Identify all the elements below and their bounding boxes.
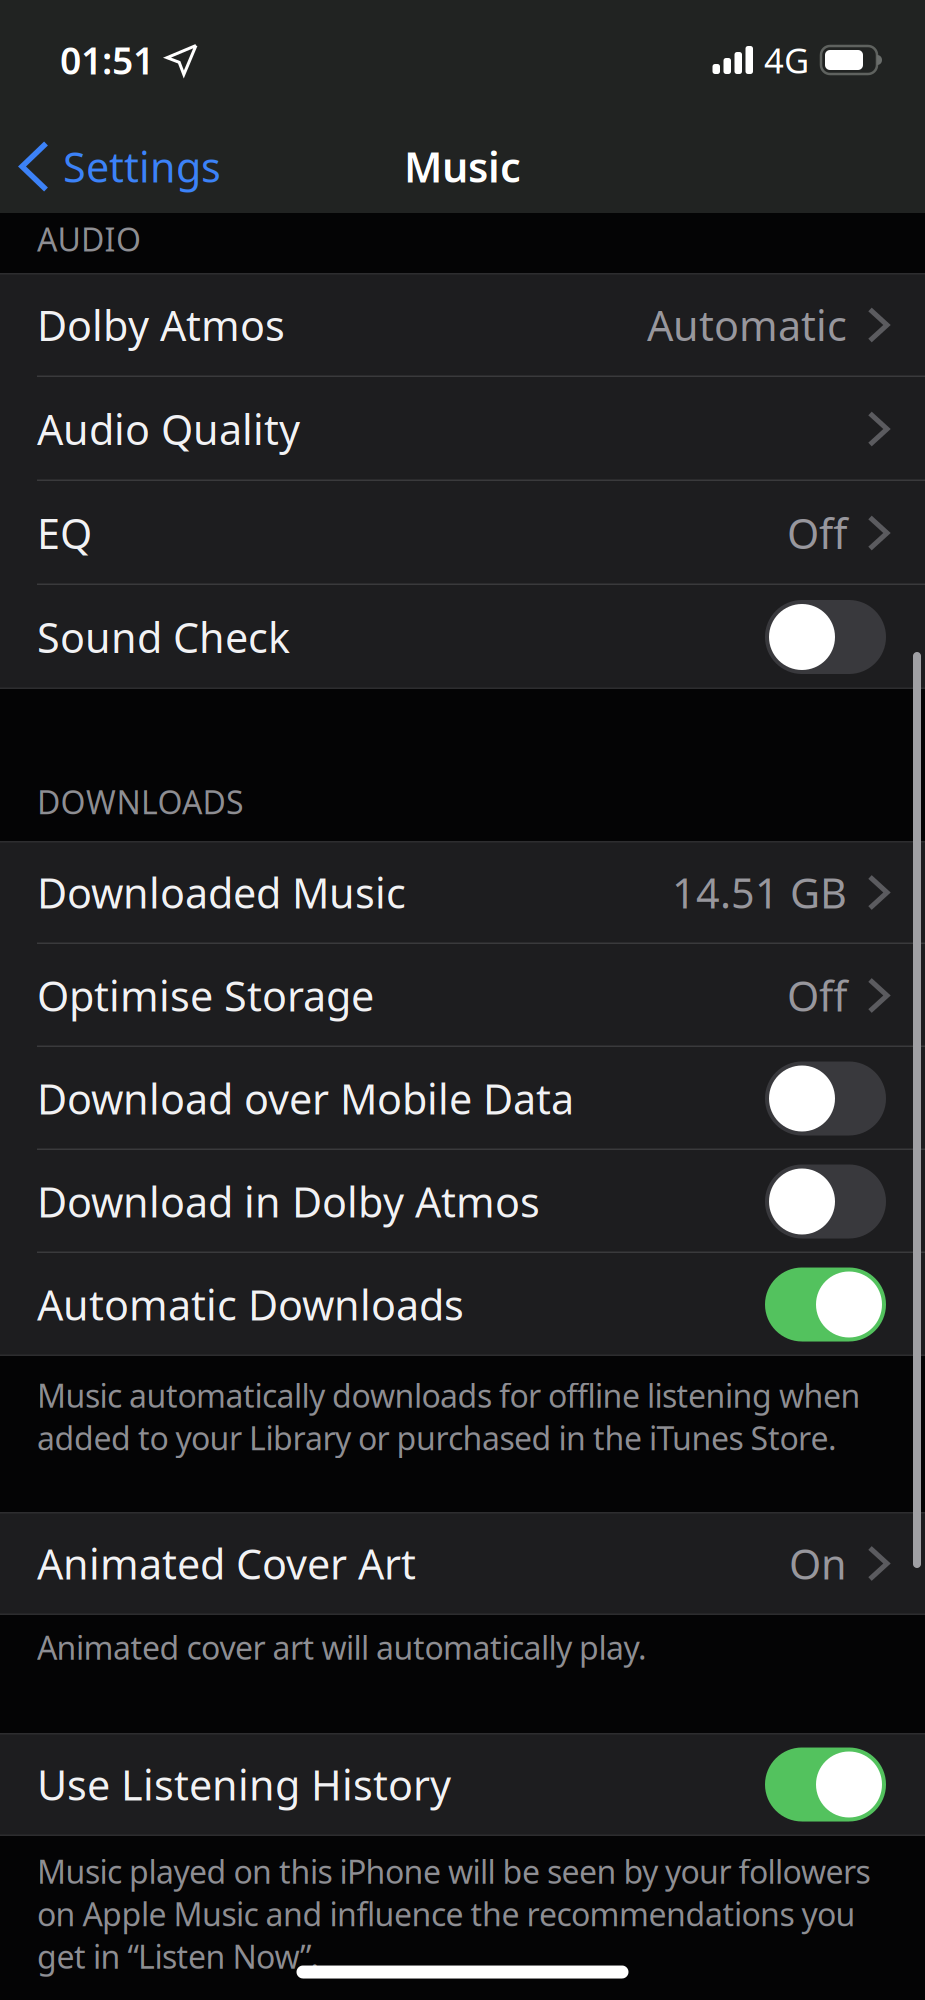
button[interactable]: EQ: [0, 481, 925, 585]
button[interactable]: Sound Check: [765, 600, 886, 674]
staticText: Download in Dolby Atmos: [37, 1174, 540, 1229]
staticText: get in “Listen Now”.: [37, 1935, 319, 1977]
button[interactable]: Download over Mobile Data: [765, 1061, 886, 1135]
staticText: DOWNLOADS: [37, 780, 244, 823]
button[interactable]: Audio Quality: [0, 377, 925, 481]
staticText: Off: [787, 968, 847, 1023]
staticText: Settings: [63, 139, 221, 194]
button[interactable]: Download in Dolby Atmos: [765, 1164, 886, 1238]
staticText: Dolby Atmos: [37, 298, 285, 352]
staticText: on Apple Music and influence the recomme…: [37, 1892, 855, 1935]
button[interactable]: Optimise Storage: [0, 944, 925, 1047]
staticText: Audio Quality: [37, 402, 300, 456]
staticText: 14.51 GB: [672, 865, 847, 920]
staticText: Automatic Downloads: [37, 1277, 464, 1332]
staticText: Sound Check: [37, 610, 290, 664]
button[interactable]: Automatic Downloads: [765, 1267, 886, 1341]
staticText: Animated Cover Art: [37, 1536, 416, 1591]
staticText: Music played on this iPhone will be seen…: [37, 1850, 870, 1892]
staticText: Off: [787, 506, 847, 560]
button[interactable]: Animated Cover Art: [0, 1512, 925, 1615]
button[interactable]: Downloaded Music: [0, 841, 925, 944]
staticText: EQ: [37, 506, 92, 560]
staticText: Download over Mobile Data: [37, 1071, 574, 1126]
staticText: added to your Library or purchased in th…: [37, 1416, 837, 1459]
staticText: 4G: [764, 37, 809, 83]
button[interactable]: Use Listening History: [765, 1747, 886, 1821]
staticText: Music: [404, 139, 521, 194]
staticText: Downloaded Music: [37, 865, 406, 920]
button[interactable]: Back to Settings: [0, 139, 221, 194]
staticText: AUDIO: [37, 218, 141, 260]
staticText: Animated cover art will automatically pl…: [37, 1626, 647, 1668]
staticText: On: [789, 1536, 847, 1591]
staticText: Use Listening History: [37, 1757, 451, 1812]
staticText: Music automatically downloads for offlin…: [37, 1374, 860, 1416]
staticText: 01:51: [60, 35, 154, 85]
staticText: Automatic: [647, 298, 847, 352]
staticText: Optimise Storage: [37, 968, 374, 1023]
button[interactable]: Dolby Atmos: [0, 273, 925, 377]
